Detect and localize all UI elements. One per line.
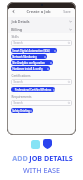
button[interactable]: Billing xyxy=(8,25,75,33)
staticText: Requirements xyxy=(11,95,32,99)
staticText: Certifications xyxy=(11,74,31,78)
button[interactable]: Network Monitoring xyxy=(11,54,47,59)
button[interactable]: Job Details xyxy=(8,17,75,25)
staticText: Save xyxy=(63,9,71,14)
staticText: Search xyxy=(13,101,23,105)
staticText: Skills xyxy=(11,35,19,39)
button[interactable]: Professional Certified Wireless (CCNA) xyxy=(11,87,55,92)
staticText: Site Analytics configuration xyxy=(12,61,45,64)
button[interactable]: Safety Briefing xyxy=(11,108,33,113)
staticText: ADD xyxy=(11,153,29,163)
staticText: Smart Digital Automation (SDA) xyxy=(12,49,50,52)
staticText: JOB DETAILS xyxy=(29,153,73,163)
staticText: Hardware install & config xyxy=(12,67,43,70)
staticText: WITH EASE xyxy=(23,165,60,175)
button[interactable]: Save xyxy=(62,9,72,14)
staticText: Create a Job xyxy=(26,9,51,15)
button[interactable]: Badge xyxy=(31,140,40,149)
staticText: Network Monitoring xyxy=(12,55,37,58)
button[interactable]: Search xyxy=(11,100,72,106)
staticText: Safety Briefing xyxy=(12,109,30,112)
staticText: Search xyxy=(13,80,23,84)
button[interactable]: Hardware install & config xyxy=(11,66,50,71)
staticText: Billing xyxy=(11,27,22,32)
button[interactable]: Shield badge xyxy=(43,139,52,149)
staticText: Search xyxy=(13,41,23,45)
button[interactable]: Back xyxy=(11,9,16,14)
staticText: Job Details xyxy=(11,19,30,24)
button[interactable]: Search xyxy=(11,79,72,85)
staticText: Professional Certified Wireless (CCNA) xyxy=(12,88,54,91)
button[interactable]: Site Analytics configuration xyxy=(11,60,53,65)
button[interactable]: Search xyxy=(11,40,72,46)
button[interactable]: Smart Digital Automation (SDA) xyxy=(11,48,57,53)
